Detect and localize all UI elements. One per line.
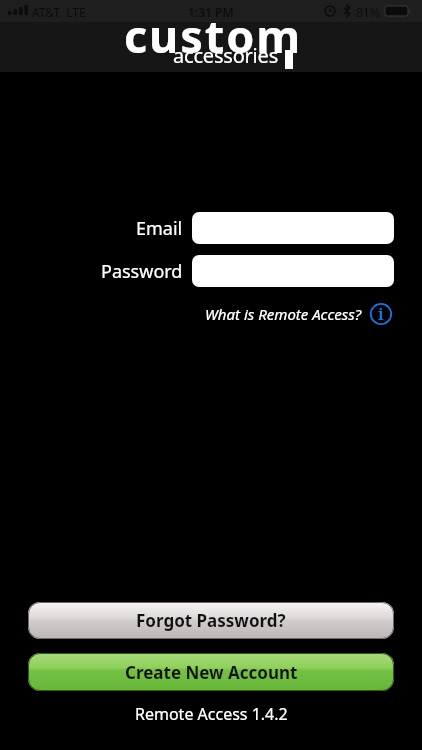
button[interactable]	[192, 212, 394, 244]
button[interactable]: What is Remote Access?	[180, 303, 362, 324]
staticText: 81%	[356, 4, 380, 20]
staticText: Remote Access 1.4.2	[135, 703, 288, 725]
staticText: Forgot Password?	[136, 609, 286, 632]
button[interactable]: Create New Account	[28, 653, 394, 691]
button[interactable]: Forgot Password?	[28, 602, 394, 639]
staticText: AT&T LTE	[32, 4, 86, 20]
staticText: 1:31 PM	[188, 4, 234, 20]
staticText: Password	[101, 259, 183, 284]
button[interactable]: i	[369, 302, 393, 326]
staticText: What is Remote Access?	[205, 304, 362, 324]
staticText: i	[378, 303, 384, 325]
staticText: Create New Account	[125, 661, 298, 684]
button[interactable]	[192, 255, 394, 287]
staticText: custom	[124, 22, 302, 55]
staticText: Email	[136, 216, 183, 241]
staticText: accessories	[173, 42, 279, 69]
